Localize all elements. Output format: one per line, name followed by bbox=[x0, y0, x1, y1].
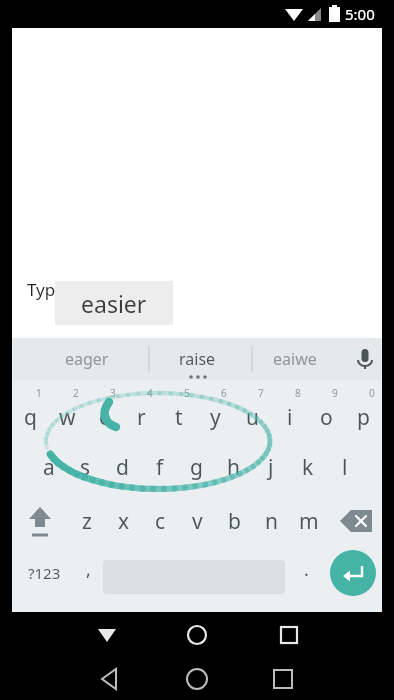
staticText: w bbox=[59, 403, 76, 432]
staticText: y bbox=[210, 403, 221, 432]
staticText: k bbox=[302, 453, 314, 482]
button[interactable]: Home bbox=[172, 612, 222, 658]
button[interactable]: Enter bbox=[330, 550, 376, 596]
button[interactable]: Backspace bbox=[332, 494, 380, 548]
staticText: t bbox=[175, 403, 183, 432]
staticText: easier bbox=[81, 288, 147, 319]
button[interactable]: Hide keyboard bbox=[82, 612, 132, 658]
staticText: raise bbox=[179, 348, 216, 370]
staticText: n bbox=[265, 507, 278, 536]
button[interactable]: s bbox=[67, 440, 104, 494]
staticText: . bbox=[304, 557, 309, 582]
button[interactable]: o bbox=[308, 384, 345, 440]
staticText: s bbox=[80, 453, 91, 482]
button[interactable]: u bbox=[234, 384, 271, 440]
staticText: 5 bbox=[184, 386, 190, 400]
button[interactable]: k bbox=[289, 440, 326, 494]
staticText: g bbox=[190, 453, 203, 482]
staticText: r bbox=[137, 403, 146, 432]
button[interactable]: z bbox=[68, 494, 105, 548]
button[interactable]: Shift bbox=[16, 494, 64, 548]
button[interactable]: t bbox=[160, 384, 197, 440]
button[interactable]: n bbox=[253, 494, 290, 548]
staticText: f bbox=[156, 453, 164, 482]
staticText: z bbox=[82, 507, 92, 536]
staticText: h bbox=[227, 453, 240, 482]
staticText: x bbox=[118, 507, 130, 536]
staticText: 7 bbox=[258, 386, 264, 400]
staticText: 8 bbox=[295, 386, 301, 400]
staticText: j bbox=[268, 453, 274, 482]
button[interactable]: Recents bbox=[258, 658, 308, 700]
button[interactable]: m bbox=[290, 494, 327, 548]
staticText: 5:00 bbox=[345, 4, 375, 24]
button[interactable]: h bbox=[215, 440, 252, 494]
button[interactable]: Recents bbox=[264, 612, 314, 658]
button[interactable]: , bbox=[74, 548, 102, 598]
staticText: e bbox=[99, 403, 111, 432]
staticText: b bbox=[228, 507, 241, 536]
button[interactable]: Home bbox=[172, 658, 222, 700]
button[interactable]: raise bbox=[152, 338, 242, 380]
staticText: q bbox=[24, 403, 37, 432]
button[interactable]: f bbox=[141, 440, 178, 494]
button[interactable]: a bbox=[30, 440, 67, 494]
staticText: eager bbox=[65, 348, 109, 370]
staticText: c bbox=[155, 507, 166, 536]
button[interactable]: easier bbox=[55, 281, 173, 325]
button[interactable]: i bbox=[271, 384, 308, 440]
staticText: u bbox=[246, 403, 259, 432]
staticText: v bbox=[192, 507, 203, 536]
button[interactable]: Voice input bbox=[348, 342, 382, 376]
button[interactable]: w bbox=[49, 384, 86, 440]
button[interactable]: c bbox=[142, 494, 179, 548]
button[interactable]: . bbox=[293, 548, 319, 598]
button[interactable]: v bbox=[179, 494, 216, 548]
button[interactable]: g bbox=[178, 440, 215, 494]
button[interactable]: q bbox=[12, 384, 49, 440]
button[interactable]: b bbox=[216, 494, 253, 548]
button[interactable]: r bbox=[123, 384, 160, 440]
staticText: ?123 bbox=[28, 563, 61, 583]
button[interactable]: e bbox=[86, 384, 123, 440]
staticText: a bbox=[43, 453, 55, 482]
button[interactable]: d bbox=[104, 440, 141, 494]
staticText: 3 bbox=[110, 386, 116, 400]
button[interactable]: eager bbox=[42, 338, 132, 380]
button[interactable]: Back bbox=[85, 658, 135, 700]
button[interactable]: eaiwe bbox=[250, 338, 340, 380]
staticText: 2 bbox=[73, 386, 79, 400]
staticText: eaiwe bbox=[273, 348, 317, 370]
button[interactable]: ?123 bbox=[16, 548, 72, 598]
staticText: 0 bbox=[369, 386, 375, 400]
staticText: p bbox=[357, 403, 370, 432]
staticText: o bbox=[320, 403, 333, 432]
staticText: 4 bbox=[147, 386, 153, 400]
staticText: 6 bbox=[221, 386, 227, 400]
button[interactable]: j bbox=[252, 440, 289, 494]
staticText: m bbox=[299, 507, 319, 536]
button[interactable]: y bbox=[197, 384, 234, 440]
button[interactable]: p bbox=[345, 384, 382, 440]
staticText: 9 bbox=[332, 386, 338, 400]
staticText: , bbox=[86, 557, 91, 582]
staticText: l bbox=[342, 453, 348, 482]
staticText: d bbox=[116, 453, 129, 482]
staticText: i bbox=[287, 403, 293, 432]
button[interactable]: l bbox=[326, 440, 363, 494]
staticText: 1 bbox=[36, 386, 42, 400]
button[interactable]: x bbox=[105, 494, 142, 548]
staticText: Typing is bbox=[27, 278, 98, 301]
